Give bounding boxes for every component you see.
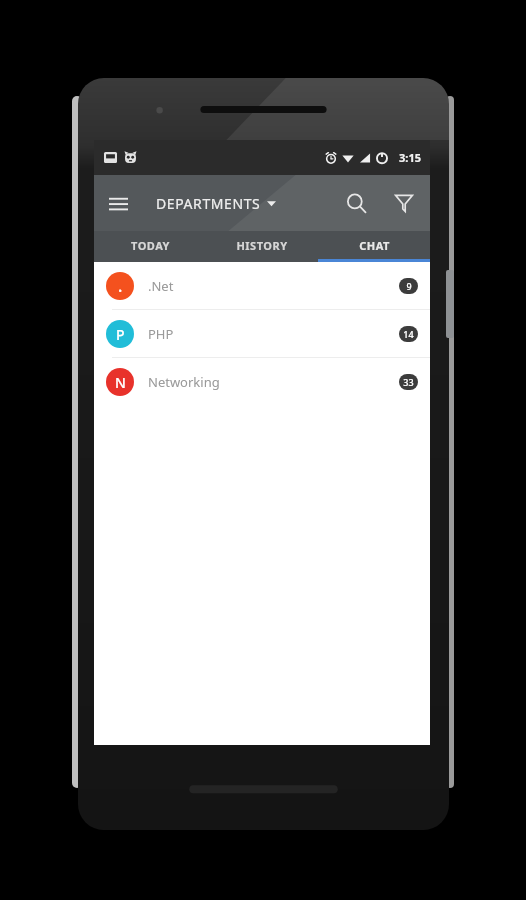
button[interactable]: P [94,310,430,357]
button[interactable]: Search [332,179,380,227]
staticText: P [116,325,125,344]
button[interactable]: N [94,358,430,405]
staticText: CHAT [359,238,390,253]
staticText: 14 [403,328,414,340]
staticText: PHP [148,325,399,343]
staticText: HISTORY [236,238,288,253]
staticText: TODAY [131,238,170,253]
staticText: . [118,275,123,297]
staticText: N [115,373,126,392]
staticText: 3:15 [399,150,421,165]
staticText: 33 [403,376,414,388]
button[interactable]: DEPARTMENTS [152,188,280,219]
staticText: DEPARTMENTS [156,194,261,213]
button[interactable]: TODAY [94,231,206,259]
button[interactable]: HISTORY [206,231,318,259]
button[interactable]: Filter [380,179,428,227]
button[interactable]: . [94,262,430,309]
staticText: 9 [406,280,412,292]
other: Power button [446,270,454,338]
staticText: Networking [148,373,399,391]
staticText: .Net [148,277,399,295]
button[interactable]: CHAT [318,231,430,259]
button[interactable]: Open navigation drawer [94,179,142,227]
